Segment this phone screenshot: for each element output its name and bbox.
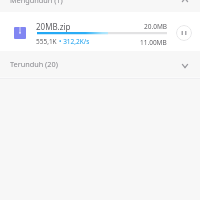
staticText: Mengunduh (1) — [10, 0, 63, 5]
staticText: 11.00MB — [140, 38, 167, 47]
other: Collapse downloading — [178, 0, 192, 6]
button[interactable]: Pause download — [176, 25, 192, 41]
staticText: • 312,2K/s — [59, 37, 90, 46]
staticText: 20.0MB — [144, 22, 168, 31]
button[interactable]: Mengunduh (1) — [0, 0, 200, 12]
staticText: Terunduh (20) — [10, 59, 58, 69]
other: Expand downloaded — [178, 59, 192, 73]
button[interactable]: 20MB.zip — [0, 12, 200, 51]
staticText: 20MB.zip — [36, 21, 71, 32]
staticText: 555,1K — [36, 37, 59, 46]
button[interactable]: Terunduh (20) — [0, 51, 200, 77]
